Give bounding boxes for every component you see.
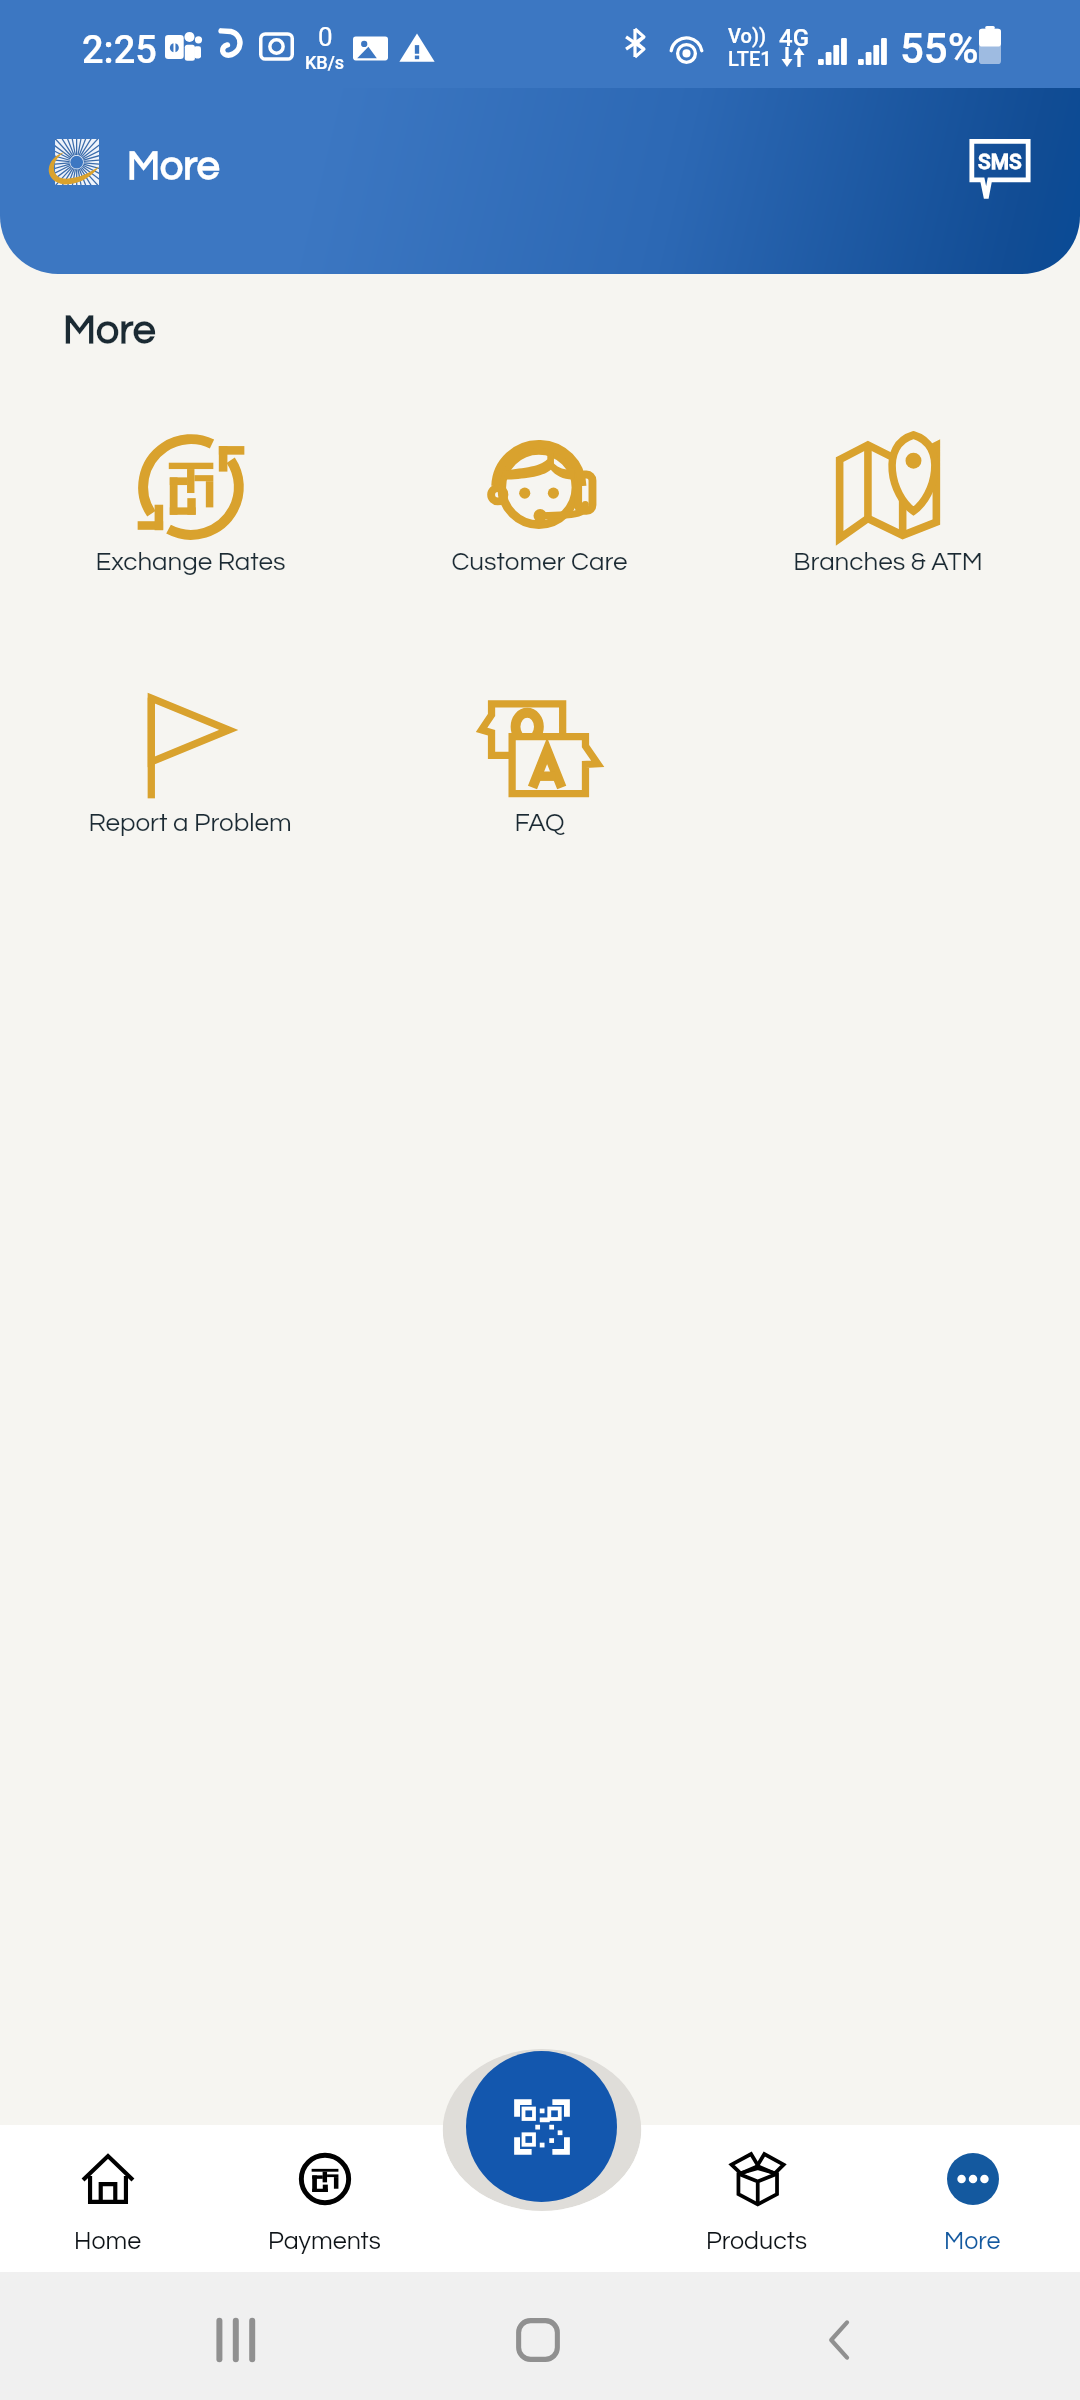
staticText: FAQ xyxy=(514,810,565,837)
staticText: Vo)) xyxy=(728,24,767,47)
staticText: Branches & ATM xyxy=(793,549,983,576)
staticText: Payments xyxy=(268,2228,381,2254)
staticText: Exchange Rates xyxy=(95,549,286,576)
button[interactable]: Payments xyxy=(216,2125,432,2272)
button[interactable]: Back xyxy=(800,2300,880,2380)
staticText: 4G xyxy=(779,24,809,52)
staticText: More xyxy=(127,145,220,187)
button[interactable]: Exchange Rates xyxy=(16,425,364,595)
button[interactable]: Scan QR code xyxy=(466,2051,617,2202)
button[interactable]: Products xyxy=(648,2125,864,2272)
staticText: More xyxy=(944,2228,1001,2254)
staticText: 2:25 xyxy=(82,28,157,73)
staticText: Report a Problem xyxy=(88,810,292,837)
staticText: 55% xyxy=(900,24,979,73)
staticText: Products xyxy=(706,2228,807,2254)
button[interactable]: Home xyxy=(498,2300,578,2380)
staticText: 0 xyxy=(318,22,333,52)
staticText: More xyxy=(63,309,156,351)
button[interactable]: More xyxy=(864,2125,1080,2272)
button[interactable]: Recent apps xyxy=(196,2300,276,2380)
staticText: SMS xyxy=(978,150,1022,175)
staticText: KB/s xyxy=(305,52,345,73)
button[interactable]: Report a Problem xyxy=(16,686,364,856)
button[interactable]: Customer Care xyxy=(365,425,713,595)
button[interactable]: Branches & ATM xyxy=(714,425,1062,595)
staticText: Customer Care xyxy=(451,549,628,576)
staticText: LTE1 xyxy=(728,47,772,70)
button[interactable]: Home xyxy=(0,2125,216,2272)
staticText: Home xyxy=(74,2228,142,2254)
button[interactable]: FAQ xyxy=(365,686,713,856)
button[interactable]: SMS xyxy=(958,126,1042,210)
